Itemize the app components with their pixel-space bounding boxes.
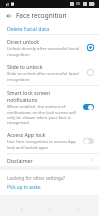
button[interactable]: Pick up to wake [7,184,41,190]
staticText: Face recognition [16,11,67,20]
button[interactable]: Access App lock [0,128,99,153]
staticText: Direct unlock [7,38,39,45]
button[interactable]: Disclaimer [0,154,99,166]
staticText: Pick up to wake [7,184,41,190]
button[interactable]: Smart lock screen notifications [83,104,94,110]
button[interactable]: Smart lock screen notifications [0,86,99,128]
staticText: Looking for other settings? [7,175,66,181]
staticText: Access App lock [7,131,46,138]
staticText: Disclaimer [7,157,90,164]
staticText: Unlock directly after successful facial … [7,46,83,57]
button[interactable]: Direct unlock [0,35,99,60]
staticText: Use Face recognition to access App lock … [7,139,79,150]
staticText: 0% [76,2,81,6]
button[interactable]: Delete facial data [0,22,99,34]
button[interactable]: Slide to unlock [0,60,99,85]
staticText: Delete facial data [7,25,50,32]
button[interactable]: Access App lock [83,138,94,144]
staticText: Smart lock screen notifications [7,89,79,103]
staticText: Slide to unlock after successful facial … [7,71,83,82]
staticText: When enabled, the content of notificatio… [7,104,79,125]
button[interactable]: Back [3,10,14,21]
staticText: Slide to unlock [7,63,43,70]
